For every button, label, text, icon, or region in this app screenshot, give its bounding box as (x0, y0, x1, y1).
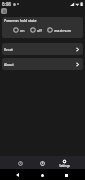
staticText: Settings (59, 164, 70, 168)
staticText: 6:08 (2, 1, 11, 7)
staticText: About (4, 62, 14, 67)
staticText: on (20, 28, 25, 33)
button[interactable]: Back (11, 172, 24, 178)
button[interactable]: About (2, 58, 83, 70)
button[interactable]: on (13, 27, 25, 33)
staticText: Poweron hold state (4, 18, 37, 23)
button[interactable]: Home (36, 172, 49, 178)
staticText: maximum (54, 28, 72, 33)
button[interactable]: Time (9, 156, 31, 169)
button[interactable]: Recents (60, 172, 73, 178)
button[interactable]: App icon (1, 8, 7, 14)
button[interactable]: off (30, 27, 42, 33)
staticText: off (37, 28, 42, 33)
button[interactable]: Reset (2, 43, 83, 55)
staticText: Reset (4, 47, 13, 52)
button[interactable]: Power (31, 156, 53, 169)
button[interactable]: Settings (53, 156, 75, 169)
button[interactable]: maximum (47, 27, 72, 33)
